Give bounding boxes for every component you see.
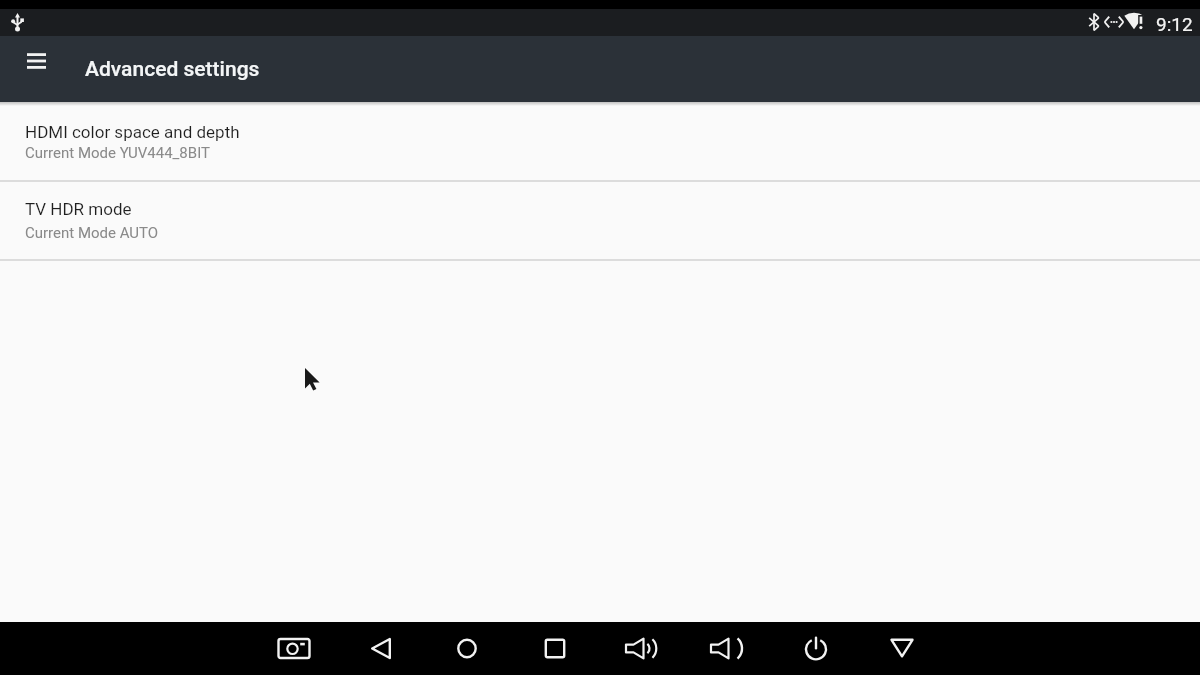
staticText: Current Mode YUV444_8BIT bbox=[25, 144, 210, 162]
staticText: TV HDR mode bbox=[25, 199, 132, 219]
button[interactable] bbox=[614, 622, 670, 675]
staticText: Advanced settings bbox=[85, 57, 260, 82]
button[interactable] bbox=[874, 622, 930, 675]
button[interactable]: TV HDR mode bbox=[0, 181, 1200, 259]
button[interactable] bbox=[439, 622, 495, 675]
staticText: Current Mode AUTO bbox=[25, 224, 159, 242]
button[interactable] bbox=[266, 622, 322, 675]
button[interactable] bbox=[15, 41, 59, 97]
staticText: 9:12 bbox=[1156, 13, 1193, 35]
button[interactable]: HDMI color space and depth bbox=[0, 102, 1200, 180]
button[interactable] bbox=[699, 622, 755, 675]
button[interactable] bbox=[527, 622, 583, 675]
button[interactable] bbox=[788, 622, 844, 675]
staticText: HDMI color space and depth bbox=[25, 122, 240, 142]
button[interactable] bbox=[353, 622, 409, 675]
